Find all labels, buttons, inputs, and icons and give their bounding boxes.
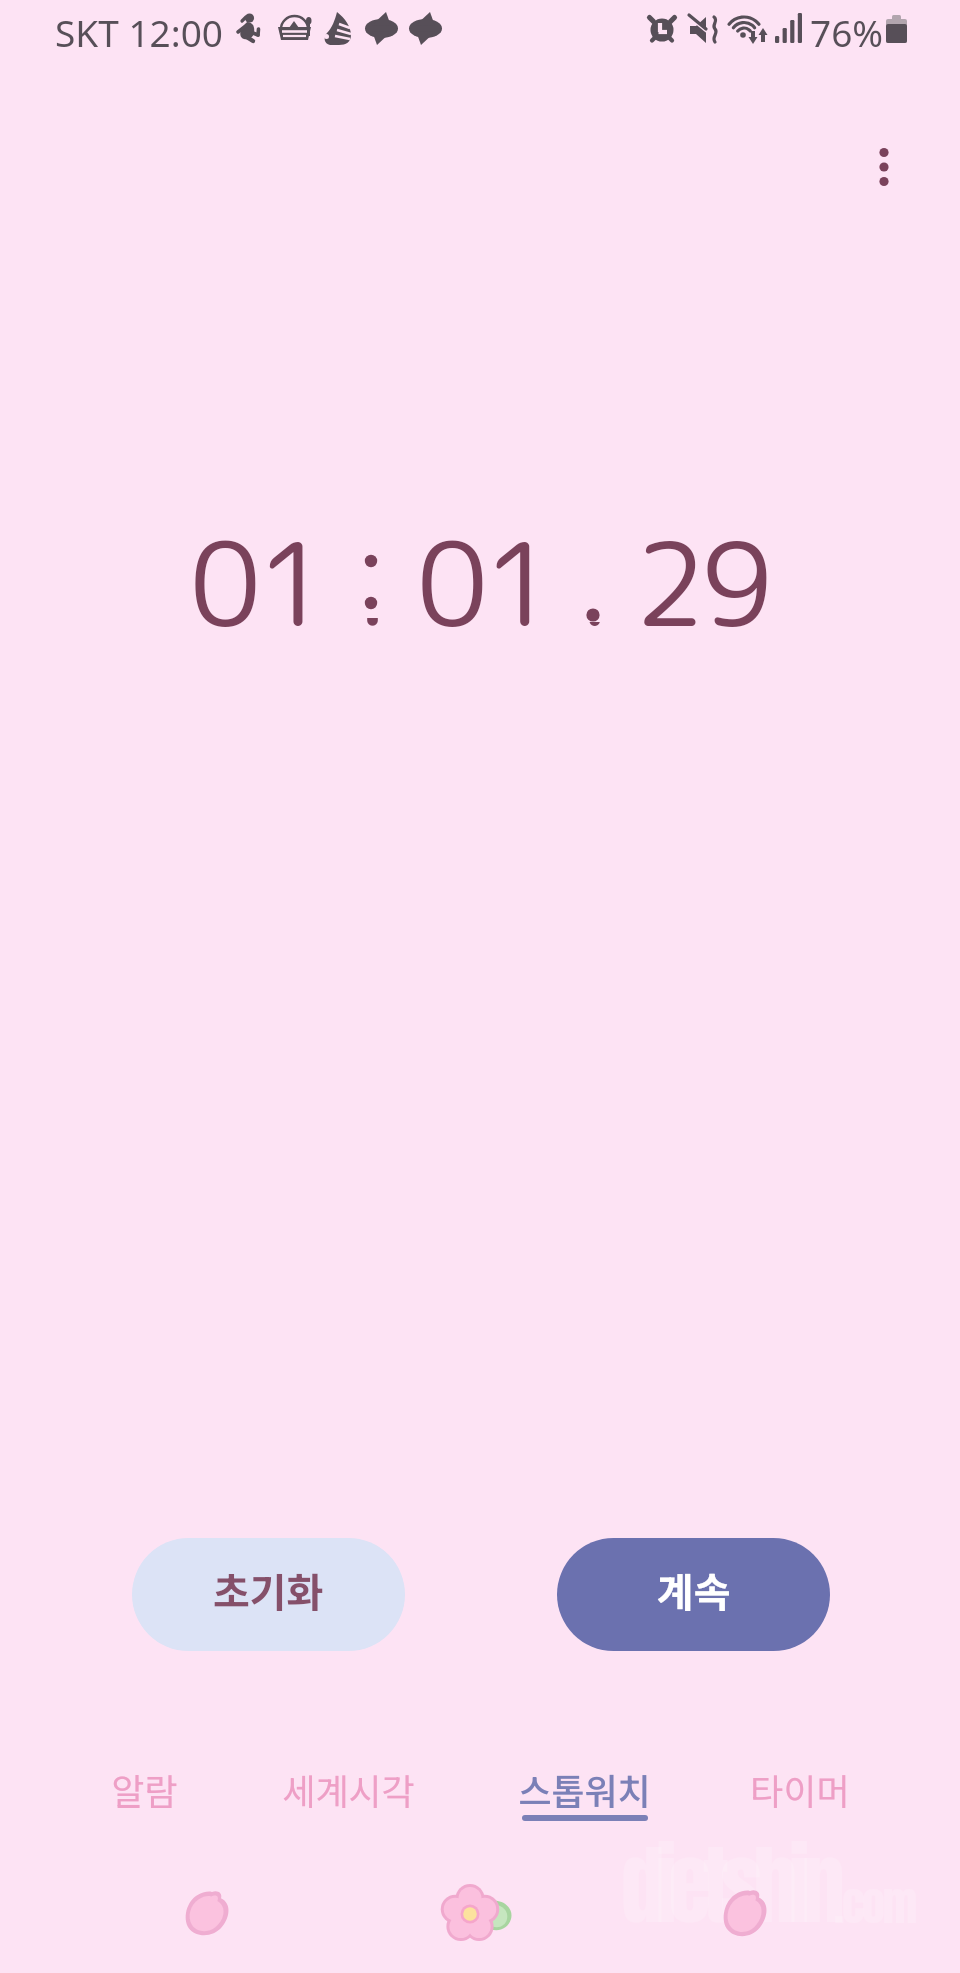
button[interactable]: 알람: [34, 1763, 254, 1829]
button[interactable]: 스톱워치: [474, 1763, 694, 1829]
button[interactable]: More options: [836, 119, 932, 215]
staticText: 세계시각: [282, 1763, 415, 1815]
staticText: 스톱워치: [518, 1763, 651, 1815]
staticText: 계속: [657, 1561, 731, 1619]
staticText: 01 : 01 . 29: [190, 503, 770, 662]
staticText: SKT 12:00: [55, 7, 223, 57]
button[interactable]: 초기화: [132, 1538, 405, 1651]
staticText: 알람: [111, 1763, 178, 1815]
staticText: dietshin: [621, 1820, 837, 1951]
staticText: 타이머: [750, 1763, 850, 1815]
button[interactable]: 계속: [557, 1538, 830, 1651]
staticText: 76%: [810, 7, 884, 57]
staticText: 초기화: [213, 1561, 324, 1619]
button[interactable]: 타이머: [690, 1763, 910, 1829]
button[interactable]: 세계시각: [238, 1763, 458, 1829]
